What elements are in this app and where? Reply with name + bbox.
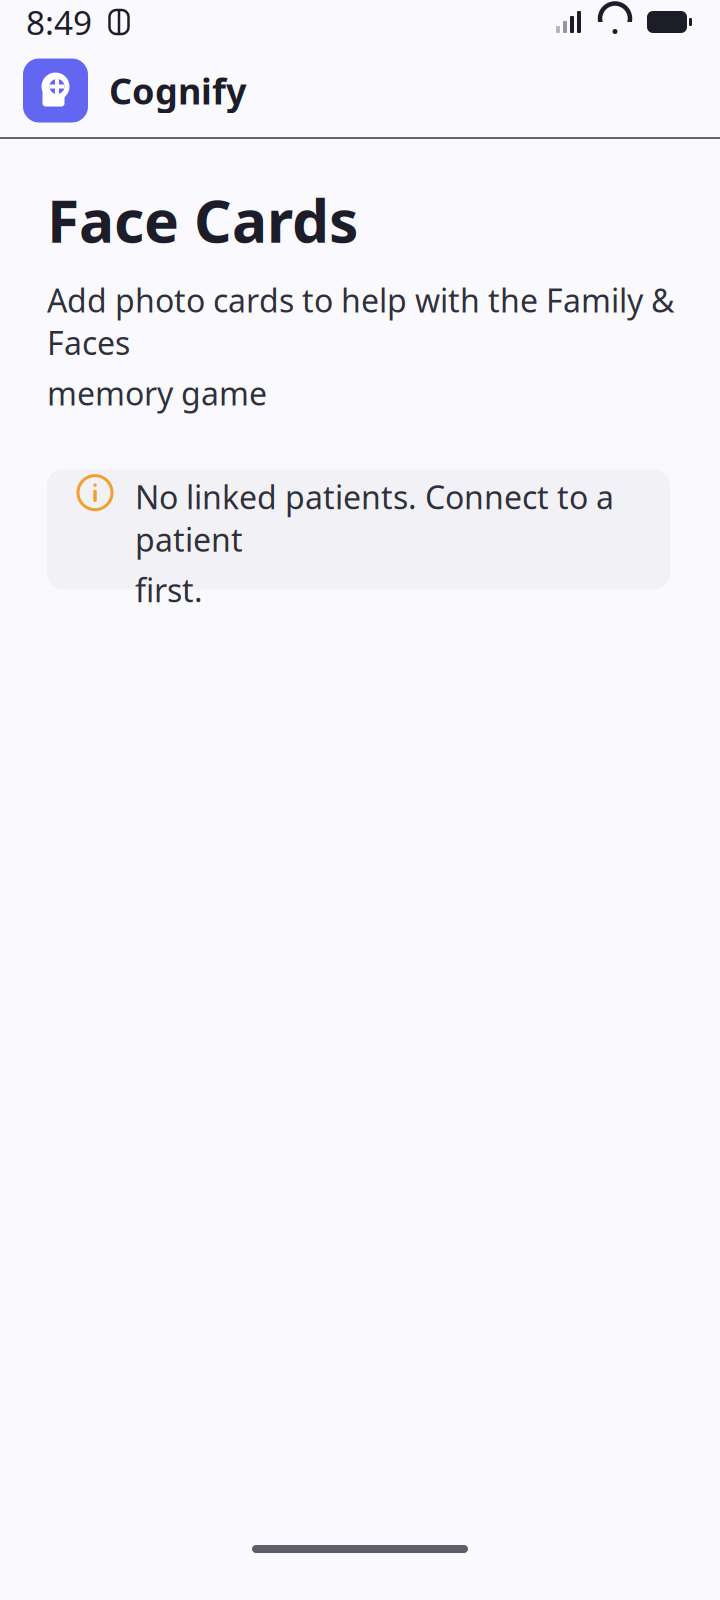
button[interactable]: Cognify home <box>23 58 88 122</box>
staticText: first. <box>135 569 203 611</box>
staticText: Add photo cards to help with the Family … <box>47 279 674 364</box>
staticText: memory game <box>47 372 267 414</box>
staticText: Cognify <box>109 67 247 114</box>
staticText: 8:49 <box>26 0 92 44</box>
staticText: No linked patients. Connect to a patient <box>135 476 614 561</box>
staticText: Face Cards <box>47 181 358 259</box>
